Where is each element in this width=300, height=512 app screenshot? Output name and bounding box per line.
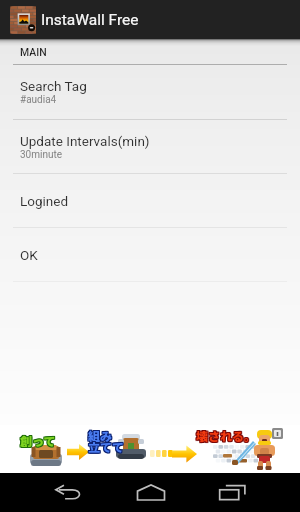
staticText: 組み: [89, 427, 114, 444]
staticText: 組み: [88, 427, 113, 444]
staticText: 立てて: [87, 438, 124, 455]
staticText: 組み: [87, 428, 112, 445]
button[interactable]: Recent apps: [191, 473, 272, 512]
staticText: 立てて: [87, 437, 124, 454]
staticText: 立てて: [88, 438, 125, 455]
staticText: 創って: [20, 433, 56, 450]
staticText: 創って: [21, 433, 57, 450]
button[interactable]: OK: [0, 228, 300, 281]
staticText: #audia4: [20, 94, 57, 106]
button[interactable]: Logined: [0, 174, 300, 227]
staticText: 創って: [20, 431, 56, 448]
staticText: 組み: [89, 426, 114, 443]
staticText: OK: [20, 247, 38, 263]
staticText: 組み: [87, 426, 112, 443]
staticText: 立てて: [89, 439, 126, 456]
button[interactable]: Update Intervals(min): [0, 120, 300, 173]
button[interactable]: Back: [28, 473, 110, 512]
staticText: 壊される。: [197, 428, 258, 445]
staticText: 立てて: [87, 439, 124, 456]
staticText: 壊される。: [197, 426, 258, 443]
button[interactable]: Search Tag: [0, 65, 300, 119]
staticText: 立てて: [88, 437, 125, 454]
staticText: 創って: [20, 432, 56, 449]
staticText: Logined: [20, 193, 69, 209]
staticText: Search Tag: [20, 78, 87, 94]
staticText: InstaWall Free: [41, 11, 139, 29]
staticText: 創って: [19, 433, 55, 450]
staticText: 壊される。: [197, 427, 258, 444]
staticText: 壊される。: [196, 426, 257, 443]
staticText: 立てて: [89, 437, 126, 454]
staticText: 創って: [21, 432, 57, 449]
staticText: Update Intervals(min): [20, 133, 150, 149]
other: App icon: [10, 6, 36, 34]
staticText: MAIN: [20, 46, 47, 58]
staticText: 立てて: [88, 439, 125, 456]
staticText: 壊される。: [195, 426, 256, 443]
staticText: 組み: [88, 426, 113, 443]
staticText: 創って: [21, 431, 57, 448]
staticText: 創って: [19, 431, 55, 448]
button[interactable]: Home: [110, 473, 191, 512]
staticText: 壊される。: [196, 428, 257, 445]
staticText: 創って: [19, 432, 55, 449]
staticText: 壊される。: [195, 428, 256, 445]
button[interactable]: Advertisement banner: [0, 425, 300, 473]
staticText: 立てて: [89, 438, 126, 455]
staticText: 組み: [87, 427, 112, 444]
staticText: 壊される。: [196, 427, 257, 444]
staticText: 壊される。: [195, 427, 256, 444]
staticText: 組み: [88, 428, 113, 445]
staticText: 組み: [89, 428, 114, 445]
staticText: 30minute: [20, 149, 63, 161]
